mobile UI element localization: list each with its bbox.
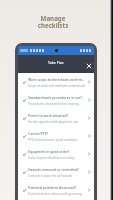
staticText: Tools inspected before use today (28, 156, 75, 160)
button[interactable]: Permit to work obtained? (18, 109, 94, 127)
staticText: Procedures reviewed before starting (28, 102, 80, 106)
button[interactable]: Correct PPE? (18, 127, 94, 145)
staticText: Equipment in good order? (28, 149, 70, 154)
staticText: Permit to work obtained? (28, 113, 69, 118)
button[interactable]: Standard work procedures in use? (18, 91, 94, 109)
staticText: Controls in place for all hazards (28, 174, 73, 178)
staticText: Hazards removed or controlled? (28, 167, 79, 172)
staticText: Scope of work and methods understood (28, 84, 85, 88)
staticText: PPE checked and in good condition (28, 138, 78, 142)
button[interactable]: Close (85, 62, 93, 70)
staticText: Correct PPE? (28, 131, 49, 136)
staticText: Take Five (48, 60, 64, 65)
staticText: Work scope and methods confirmed? (28, 77, 85, 82)
button[interactable]: Equipment in good order? (18, 145, 94, 163)
staticText: Team briefed on what could go wrong (28, 192, 82, 196)
staticText: Permit signed and displayed on site (28, 120, 79, 124)
staticText: Potential problems discussed? (28, 185, 77, 190)
staticText: Standard work procedures in use? (28, 95, 83, 100)
staticText: Manage checklists (20, 14, 86, 30)
button[interactable]: Work scope and methods confirmed? (18, 73, 94, 91)
button[interactable]: Potential problems discussed? (18, 181, 94, 199)
button[interactable]: Hazards removed or controlled? (18, 163, 94, 181)
